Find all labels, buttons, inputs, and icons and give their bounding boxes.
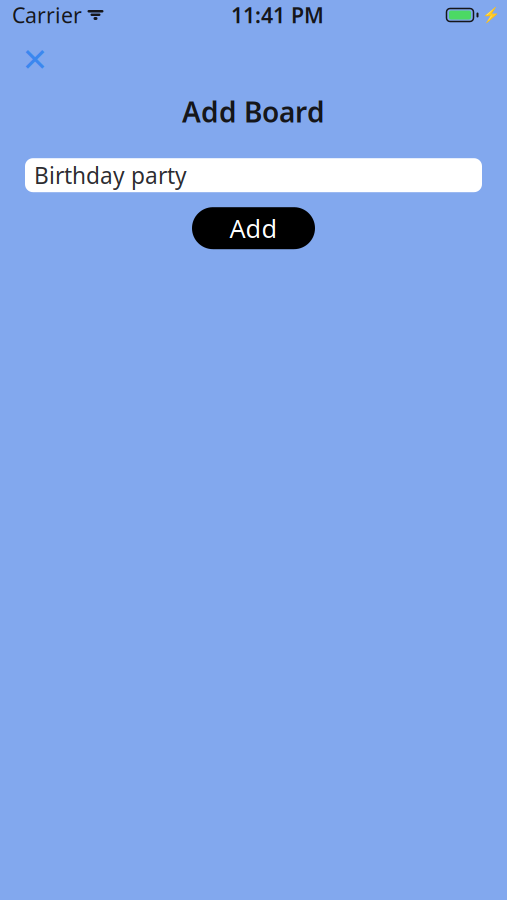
- staticText: Carrier: [12, 1, 82, 29]
- staticText: ✕: [21, 42, 48, 78]
- button[interactable]: Close: [15, 40, 55, 80]
- staticText: ⚡: [481, 7, 499, 23]
- staticText: 11:41 PM: [231, 1, 324, 29]
- staticText: Add: [229, 211, 277, 245]
- button[interactable]: Add: [192, 207, 315, 249]
- staticText: Add Board: [182, 93, 325, 130]
- staticText: Birthday party: [34, 160, 187, 190]
